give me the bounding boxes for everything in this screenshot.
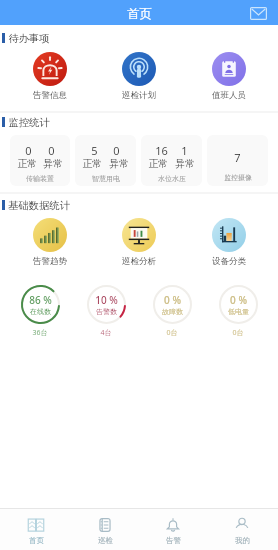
staticText: 设备分类: [212, 256, 246, 267]
staticText: 首页: [127, 6, 152, 21]
staticText: 0: [25, 143, 32, 158]
staticText: 0 %: [230, 293, 247, 307]
staticText: 异常: [43, 158, 63, 170]
staticText: 告警信息: [33, 90, 67, 101]
staticText: 正常: [17, 158, 37, 170]
button[interactable]: 告警: [141, 509, 205, 550]
staticText: 4台: [100, 328, 112, 338]
staticText: 0台: [232, 328, 244, 338]
staticText: 基础数据统计: [8, 199, 70, 212]
button[interactable]: 告警趋势: [10, 218, 90, 267]
staticText: 告警: [166, 536, 181, 545]
staticText: 待办事项: [8, 32, 50, 45]
staticText: 36台: [32, 328, 48, 338]
button[interactable]: 10 %: [76, 284, 136, 338]
button[interactable]: 0 %: [208, 284, 268, 338]
button[interactable]: 值班人员: [189, 52, 269, 101]
button[interactable]: 设备分类: [189, 218, 269, 267]
staticText: 智慧用电: [92, 174, 120, 183]
staticText: 告警趋势: [33, 256, 67, 267]
staticText: 首页: [29, 536, 44, 545]
staticText: 巡检计划: [122, 90, 156, 101]
staticText: 86 %: [29, 293, 52, 307]
staticText: 低电量: [228, 307, 249, 316]
staticText: 0 %: [164, 293, 181, 307]
staticText: 10 %: [95, 293, 118, 307]
button[interactable]: 巡检分析: [99, 218, 179, 267]
button[interactable]: 巡检: [73, 509, 137, 550]
staticText: 异常: [175, 158, 195, 170]
staticText: 监控统计: [8, 116, 50, 129]
button[interactable]: 告警信息: [10, 52, 90, 101]
button[interactable]: 16: [141, 135, 202, 186]
staticText: 监控摄像: [224, 173, 252, 182]
staticText: 故障数: [162, 307, 183, 316]
button[interactable]: 5: [75, 135, 136, 186]
button[interactable]: 我的: [210, 509, 274, 550]
button[interactable]: 巡检计划: [99, 52, 179, 101]
staticText: 在线数: [30, 307, 51, 316]
staticText: 正常: [148, 158, 168, 170]
staticText: 0台: [166, 328, 178, 338]
staticText: 异常: [109, 158, 129, 170]
staticText: 7: [234, 150, 241, 165]
staticText: 正常: [82, 158, 102, 170]
staticText: 0: [113, 143, 120, 158]
staticText: 水位水压: [158, 174, 186, 183]
button[interactable]: 0 %: [142, 284, 202, 338]
staticText: 16: [155, 143, 168, 158]
button[interactable]: 7: [207, 135, 268, 186]
staticText: 0: [48, 143, 55, 158]
staticText: 告警数: [96, 307, 117, 316]
staticText: 巡检: [98, 536, 113, 545]
button[interactable]: 86 %: [10, 284, 70, 338]
button[interactable]: 0: [10, 135, 70, 186]
staticText: 传输装置: [26, 174, 54, 183]
staticText: 我的: [235, 536, 250, 545]
staticText: 巡检分析: [122, 256, 156, 267]
staticText: 5: [91, 143, 98, 158]
button[interactable]: Messages: [248, 3, 268, 23]
staticText: 1: [181, 143, 188, 158]
staticText: 值班人员: [212, 90, 246, 101]
button[interactable]: 首页: [4, 509, 68, 550]
